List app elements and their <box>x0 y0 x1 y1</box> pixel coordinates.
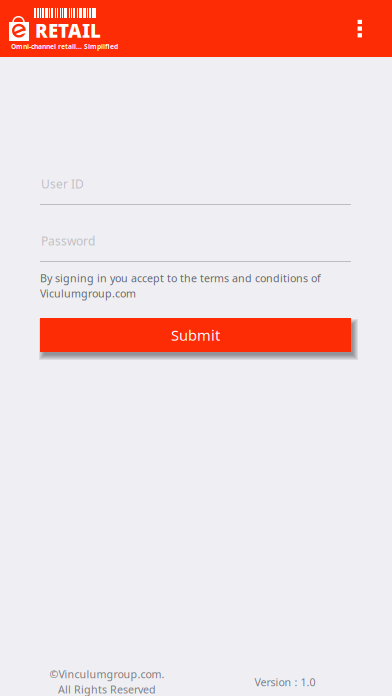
staticText: Password <box>41 233 95 249</box>
staticText: Submit <box>171 325 220 345</box>
button[interactable]: More options <box>352 0 392 57</box>
staticText: Omni-channel retail... Simplified <box>11 42 118 51</box>
staticText: By signing in you accept to the terms an… <box>40 271 321 285</box>
staticText: User ID <box>41 176 84 192</box>
button[interactable]: Password <box>40 233 351 262</box>
staticText: Viculumgroup.com <box>40 286 136 300</box>
staticText: Version : 1.0 <box>254 675 315 689</box>
staticText: All Rights Reserved <box>58 682 156 696</box>
staticText: RETAIL <box>35 18 101 43</box>
button[interactable]: Submit <box>40 318 351 352</box>
staticText: ©Vinculumgroup.com. <box>49 667 164 681</box>
button[interactable]: User ID <box>40 176 351 205</box>
